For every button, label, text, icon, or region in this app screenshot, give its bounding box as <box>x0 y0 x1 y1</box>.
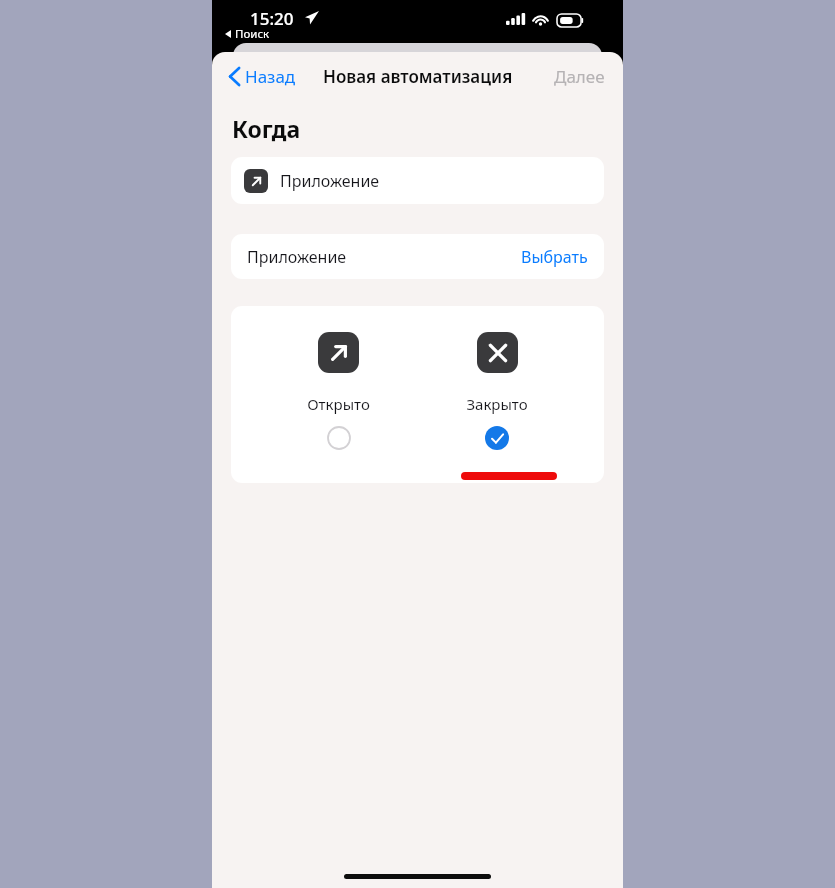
button[interactable]: Закрыто <box>446 328 548 454</box>
staticText: 15:20 <box>250 7 294 30</box>
staticText: Поиск <box>235 26 270 42</box>
staticText: Назад <box>245 65 296 88</box>
button[interactable]: Приложение <box>231 157 604 204</box>
staticText: Выбрать <box>521 246 588 268</box>
button[interactable]: Назад <box>223 59 302 94</box>
button[interactable]: Далее <box>548 59 611 94</box>
button[interactable]: Открыто <box>287 328 390 454</box>
button[interactable]: Приложение <box>231 234 604 279</box>
staticText: Открыто <box>307 394 370 414</box>
staticText: Закрыто <box>466 394 528 414</box>
staticText: Приложение <box>247 246 347 268</box>
staticText: Новая автоматизация <box>323 65 513 88</box>
staticText: Приложение <box>280 170 380 192</box>
staticText: Далее <box>554 65 605 88</box>
staticText: Когда <box>232 113 301 144</box>
